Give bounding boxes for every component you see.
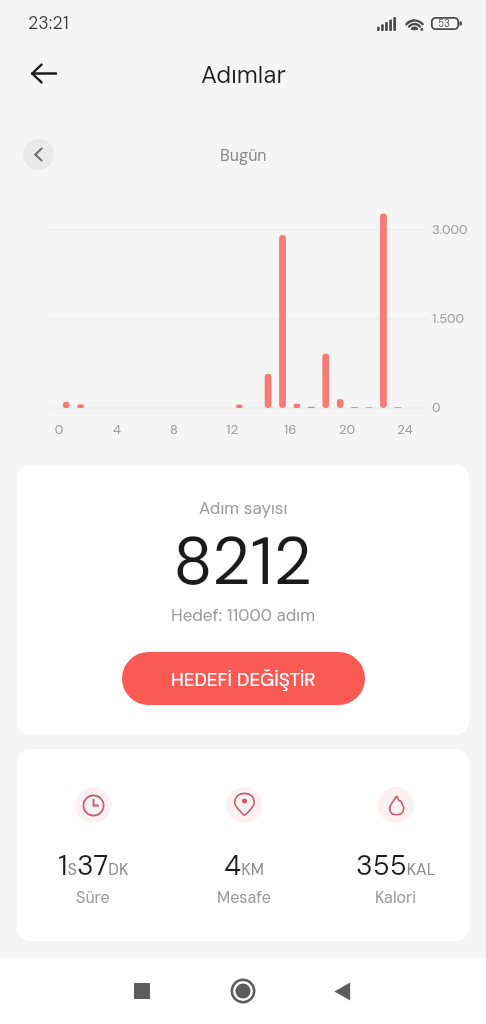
staticText: 1.500 (432, 310, 465, 327)
button[interactable]: Recent apps (120, 969, 164, 1013)
staticText: HEDEFİ DEĞİŞTİR (171, 667, 316, 691)
button[interactable]: 1S37DK (17, 749, 169, 941)
staticText: 0 (432, 399, 441, 416)
button[interactable]: 4KM (168, 749, 320, 941)
button[interactable]: Previous day (23, 139, 54, 170)
staticText: 20 (332, 421, 362, 438)
staticText: 53 (438, 17, 451, 30)
staticText: 8 (159, 421, 189, 438)
staticText: Hedef: 11000 adım (171, 604, 316, 626)
staticText: 1S37DK (58, 847, 129, 883)
button[interactable]: Back (320, 969, 364, 1013)
staticText: 0 (44, 421, 74, 438)
button[interactable]: Back (22, 52, 64, 94)
button[interactable]: Home (221, 969, 265, 1013)
staticText: Mesafe (217, 887, 271, 908)
staticText: 4KM (224, 847, 264, 883)
staticText: Adımlar (201, 59, 286, 90)
button[interactable]: 355KAL (320, 749, 469, 941)
staticText: 12 (217, 421, 247, 438)
staticText: Adım sayısı (199, 497, 288, 519)
staticText: Bugün (220, 145, 267, 166)
staticText: 23:21 (28, 12, 69, 35)
staticText: 8212 (173, 519, 313, 605)
staticText: 16 (275, 421, 305, 438)
staticText: Süre (76, 887, 110, 908)
staticText: 355KAL (356, 847, 436, 883)
staticText: 3.000 (432, 221, 468, 238)
button[interactable]: HEDEFİ DEĞİŞTİR (122, 652, 365, 705)
staticText: 4 (102, 421, 132, 438)
staticText: 24 (390, 421, 420, 438)
staticText: Kalori (375, 887, 417, 908)
